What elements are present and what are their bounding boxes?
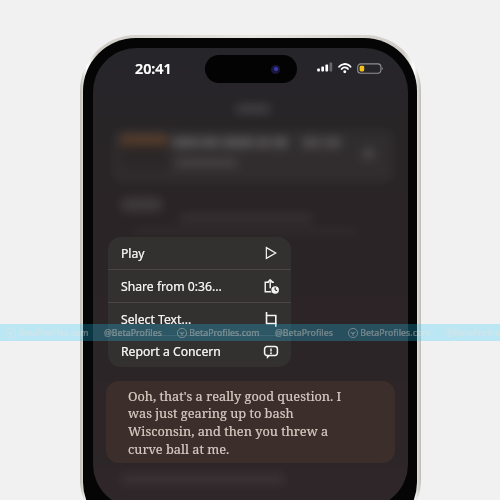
- button[interactable]: Play: [108, 237, 291, 269]
- staticText: BetaProfiles.com: [16, 327, 89, 339]
- staticText: Report a Concern: [121, 343, 221, 360]
- button[interactable]: Select Text...: [108, 303, 291, 335]
- staticText: BetaProfiles.com: [358, 327, 431, 339]
- staticText: Ooh, that's a really good question. I wa…: [128, 387, 342, 458]
- staticText: 20:41: [135, 59, 172, 78]
- button[interactable]: Share from 0:36...: [108, 270, 291, 302]
- staticText: @BetaProfiles: [275, 327, 333, 339]
- other: Select Text: [263, 311, 279, 327]
- staticText: @BetaProfiles: [104, 327, 162, 339]
- staticText: BetaProfiles.com: [187, 327, 260, 339]
- staticText: @BetaProfiles: [446, 327, 500, 339]
- other: Play: [263, 245, 279, 261]
- staticText: Play: [121, 245, 145, 262]
- other: Share from 0:36: [263, 278, 279, 294]
- button[interactable]: Ooh, that's a really good question. I wa…: [106, 381, 395, 463]
- staticText: Select Text...: [121, 311, 192, 328]
- other: Report a Concern: [263, 344, 279, 360]
- staticText: Share from 0:36...: [121, 278, 222, 295]
- button[interactable]: Report a Concern: [108, 336, 291, 367]
